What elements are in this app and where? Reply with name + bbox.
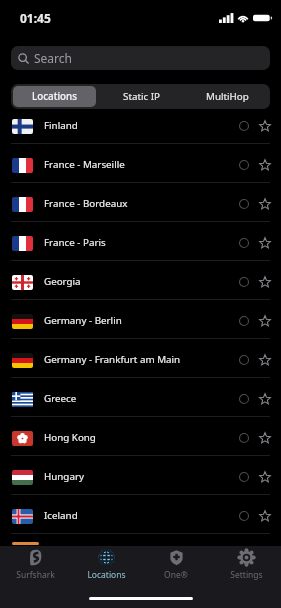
button[interactable]: Static IP [100,86,182,107]
button[interactable]: Hungary [0,456,281,495]
button[interactable]: Select Georgia [233,271,254,292]
button[interactable]: France - Marseille [0,144,281,183]
button[interactable]: Settings [211,546,281,584]
button[interactable]: Locations [13,86,96,107]
button[interactable]: Favourite Germany - Frankfurt am Main [254,349,275,370]
staticText: France - Bordeaux [44,197,233,210]
staticText: France - Marseille [44,158,233,171]
button[interactable]: Finland [0,105,281,144]
button[interactable]: Favourite France - Paris [254,232,275,253]
button[interactable]: Select Hong Kong [233,427,254,448]
staticText: Germany - Berlin [44,314,233,327]
button[interactable]: Iceland [0,495,281,534]
staticText: MultiHop [206,90,249,103]
staticText: One® [164,569,188,581]
staticText: Locations [32,90,77,103]
button[interactable]: Germany - Frankfurt am Main [0,339,281,378]
button[interactable]: Select Germany - Frankfurt am Main [233,349,254,370]
button[interactable]: Greece [0,378,281,417]
staticText: Hong Kong [44,431,233,444]
button[interactable]: Germany - Berlin [0,300,281,339]
button[interactable]: Select France - Bordeaux [233,193,254,214]
button[interactable]: Favourite Germany - Berlin [254,310,275,331]
staticText: 01:45 [20,10,51,26]
button[interactable]: France - Paris [0,222,281,261]
staticText: Finland [44,119,233,132]
staticText: Search [34,50,72,66]
staticText: France - Paris [44,236,233,249]
button[interactable]: Georgia [0,261,281,300]
button[interactable]: Favourite Greece [254,388,275,409]
staticText: Hungary [44,470,233,483]
button[interactable]: Select Finland [233,115,254,136]
button[interactable]: Select Germany - Berlin [233,310,254,331]
button[interactable]: Select Hungary [233,466,254,487]
button[interactable]: Favourite Finland [254,115,275,136]
button[interactable]: MultiHop [186,86,268,107]
button[interactable]: Select France - Paris [233,232,254,253]
button[interactable]: Select Greece [233,388,254,409]
button[interactable]: Surfshark [0,546,71,584]
staticText: Locations [87,569,126,581]
staticText: Iceland [44,509,233,522]
button[interactable]: Locations [71,546,141,584]
button[interactable]: Favourite Hungary [254,466,275,487]
staticText: Static IP [123,90,160,103]
staticText: Greece [44,392,233,405]
button[interactable]: Select France - Marseille [233,154,254,175]
button[interactable]: Select Iceland [233,505,254,526]
staticText: Surfshark [16,569,55,581]
button[interactable]: Favourite Georgia [254,271,275,292]
button[interactable]: Favourite Iceland [254,505,275,526]
button[interactable]: Favourite Hong Kong [254,427,275,448]
button[interactable]: Hong Kong [0,417,281,456]
staticText: Georgia [44,275,233,288]
staticText: Germany - Frankfurt am Main [44,353,233,366]
button[interactable]: One® [141,546,211,584]
staticText: Settings [230,569,263,581]
button[interactable]: Search [11,46,270,70]
button[interactable]: Favourite France - Marseille [254,154,275,175]
button[interactable]: Favourite France - Bordeaux [254,193,275,214]
button[interactable]: France - Bordeaux [0,183,281,222]
